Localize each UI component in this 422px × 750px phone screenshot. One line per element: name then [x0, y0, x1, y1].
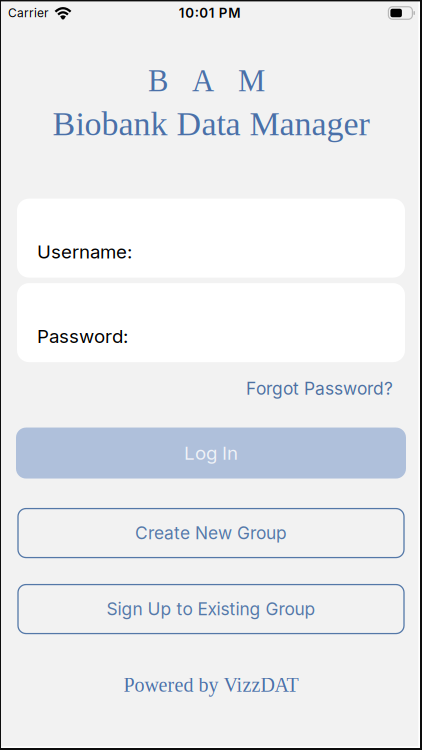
button[interactable]: Forgot Password?: [246, 378, 393, 398]
button[interactable]: Create New Group: [18, 509, 404, 558]
staticText: M: [238, 64, 265, 98]
staticText: Biobank Data Manager: [52, 105, 369, 143]
staticText: Create New Group: [135, 523, 287, 543]
staticText: Powered by VizzDAT: [123, 674, 298, 696]
staticText: B: [148, 64, 168, 98]
staticText: 10:01 PM: [179, 5, 240, 21]
staticText: Carrier: [8, 6, 49, 20]
button[interactable]: Sign Up to Existing Group: [18, 585, 404, 634]
staticText: Password:: [37, 325, 128, 347]
staticText: Sign Up to Existing Group: [106, 599, 315, 619]
button[interactable]: Log In: [16, 428, 406, 479]
button[interactable]: Password:: [17, 283, 405, 362]
button[interactable]: Username:: [17, 199, 405, 278]
staticText: A: [192, 64, 214, 98]
staticText: Forgot Password?: [246, 378, 393, 398]
staticText: Username:: [37, 241, 132, 263]
staticText: Log In: [184, 442, 238, 464]
